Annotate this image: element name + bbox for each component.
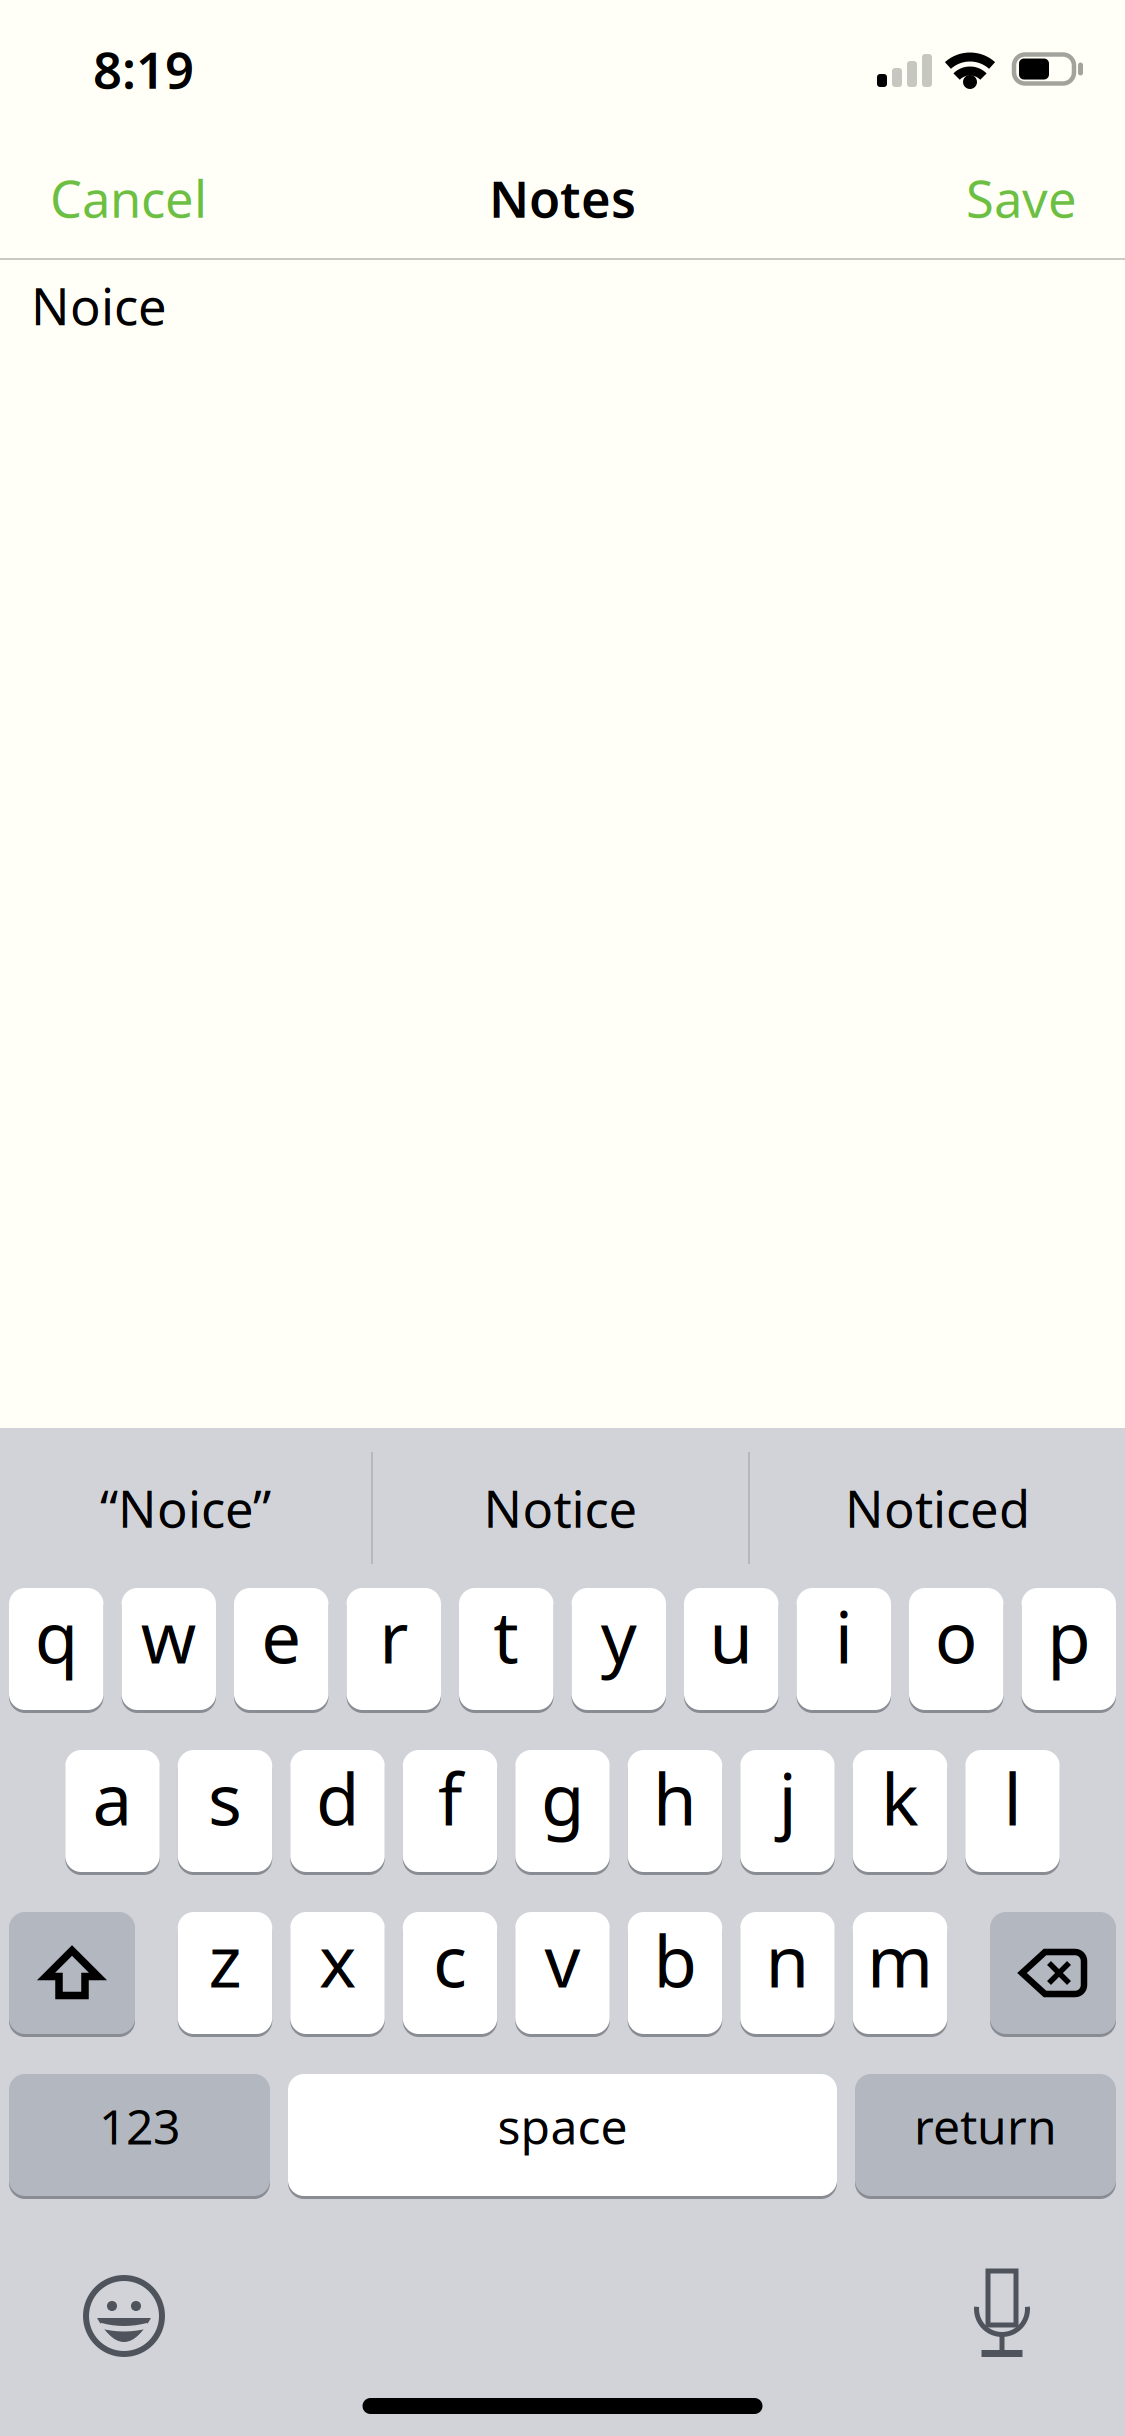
staticText: r (379, 1589, 408, 1683)
button[interactable]: return (855, 2074, 1116, 2196)
button[interactable] (973, 2272, 1031, 2360)
staticText: 8:19 (93, 35, 194, 103)
button[interactable]: n (740, 1912, 835, 2034)
button[interactable]: Noticed (750, 1428, 1125, 1588)
staticText: d (316, 1751, 359, 1845)
button[interactable]: j (740, 1750, 835, 1872)
staticText: i (835, 1589, 853, 1683)
staticText: u (709, 1589, 753, 1683)
staticText: “Noice” (100, 1474, 271, 1542)
button[interactable]: Cancel (50, 164, 207, 232)
staticText: t (493, 1589, 519, 1683)
staticText: Save (966, 164, 1077, 232)
staticText: c (433, 1913, 467, 2007)
button[interactable]: s (178, 1750, 272, 1872)
button[interactable]: c (403, 1912, 497, 2034)
button[interactable]: 123 (9, 2074, 270, 2196)
button[interactable]: a (65, 1750, 160, 1872)
staticText: 123 (99, 2094, 180, 2158)
button[interactable]: Notice (373, 1428, 748, 1588)
staticText: l (1003, 1751, 1021, 1845)
button[interactable]: f (403, 1750, 497, 1872)
staticText: k (881, 1751, 919, 1845)
button[interactable]: x (290, 1912, 385, 2034)
button[interactable]: space (288, 2074, 837, 2196)
staticText: space (497, 2094, 627, 2158)
button[interactable] (83, 2275, 165, 2357)
staticText: s (208, 1751, 242, 1845)
staticText: p (1047, 1589, 1090, 1683)
button[interactable]: Save (966, 164, 1077, 232)
staticText: Notice (483, 1474, 637, 1542)
staticText: z (208, 1913, 241, 2007)
staticText: h (653, 1751, 697, 1845)
staticText: e (261, 1589, 301, 1683)
button[interactable] (9, 1912, 135, 2034)
button[interactable]: z (178, 1912, 272, 2034)
button[interactable]: d (290, 1750, 385, 1872)
button[interactable] (990, 1912, 1116, 2034)
staticText: a (92, 1751, 132, 1845)
staticText: Cancel (50, 164, 207, 232)
button[interactable]: q (9, 1588, 103, 1710)
staticText: m (867, 1913, 933, 2007)
button[interactable]: h (628, 1750, 722, 1872)
staticText: n (765, 1913, 809, 2007)
button[interactable]: k (853, 1750, 947, 1872)
staticText: b (653, 1913, 696, 2007)
staticText: j (778, 1751, 796, 1845)
button[interactable]: u (684, 1588, 778, 1710)
button[interactable]: p (1021, 1588, 1116, 1710)
staticText: Notes (489, 164, 636, 232)
button[interactable]: r (346, 1588, 441, 1710)
staticText: f (438, 1751, 462, 1845)
button[interactable]: b (628, 1912, 722, 2034)
button[interactable]: v (515, 1912, 610, 2034)
staticText: w (141, 1589, 197, 1683)
staticText: y (601, 1589, 637, 1683)
button[interactable]: o (909, 1588, 1003, 1710)
staticText: g (541, 1751, 584, 1845)
button[interactable]: i (796, 1588, 891, 1710)
staticText: Noticed (845, 1474, 1030, 1542)
staticText: o (935, 1589, 978, 1683)
button[interactable]: m (853, 1912, 947, 2034)
button[interactable]: e (234, 1588, 328, 1710)
staticText: Noice (31, 272, 167, 339)
button[interactable]: g (515, 1750, 610, 1872)
button[interactable]: y (571, 1588, 666, 1710)
staticText: v (544, 1913, 580, 2007)
staticText: return (914, 2094, 1057, 2158)
button[interactable]: w (121, 1588, 216, 1710)
staticText: q (35, 1589, 78, 1683)
button[interactable]: “Noice” (0, 1428, 371, 1588)
button[interactable]: t (459, 1588, 553, 1710)
button[interactable]: l (965, 1750, 1060, 1872)
staticText: x (319, 1913, 356, 2007)
